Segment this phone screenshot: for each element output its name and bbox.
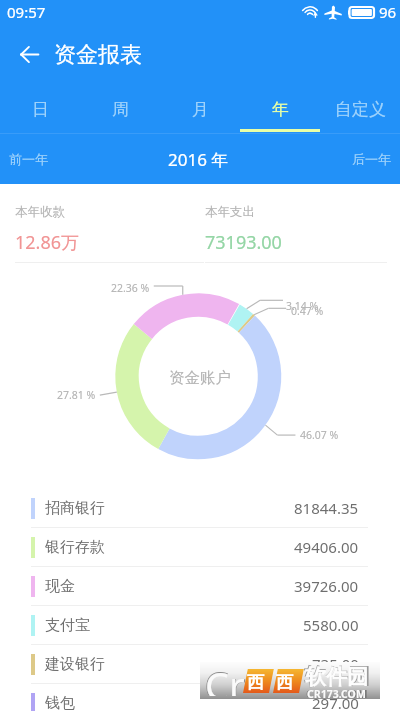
staticText: 建设银行	[45, 655, 105, 674]
staticText: 46.07 %	[300, 428, 339, 442]
staticText: 钱包	[45, 694, 75, 711]
button[interactable]: 现金	[0, 567, 400, 606]
button[interactable]: 月	[160, 85, 240, 134]
button[interactable]: 支付宝	[0, 606, 400, 645]
staticText: 0.47 %	[291, 304, 324, 318]
button[interactable]: 年	[240, 85, 320, 134]
staticText: 西	[276, 672, 293, 693]
staticText: 资金报表	[54, 41, 142, 69]
button[interactable]: 周	[80, 85, 160, 134]
staticText: 银行存款	[45, 538, 105, 557]
staticText: 297.00	[312, 693, 359, 711]
staticText: 49406.00	[294, 537, 359, 557]
button[interactable]: 前一年	[0, 134, 82, 184]
button[interactable]: 建设银行	[0, 645, 400, 684]
staticText: 支付宝	[45, 616, 90, 635]
staticText: 735.00	[312, 654, 359, 674]
staticText: 22.36 %	[111, 281, 150, 295]
staticText: 96	[379, 2, 397, 22]
staticText: Cr	[205, 659, 245, 696]
staticText: 前一年	[9, 151, 48, 167]
staticText: 招商银行	[45, 499, 105, 518]
staticText: Cr	[204, 658, 246, 695]
staticText: 资金账户	[169, 368, 231, 388]
staticText: 本年收款	[15, 204, 65, 220]
staticText: 12.86万	[15, 230, 80, 255]
staticText: CR173.COM	[306, 686, 368, 701]
staticText: 27.81 %	[57, 388, 96, 402]
staticText: 日	[32, 99, 49, 120]
staticText: 软件园	[304, 663, 370, 691]
staticText: CR173.COM	[307, 687, 366, 701]
button[interactable]: 银行存款	[0, 528, 400, 567]
button[interactable]: 招商银行	[0, 489, 400, 528]
staticText: 月	[192, 99, 209, 120]
staticText: 39726.00	[294, 576, 359, 596]
button[interactable]: 后一年	[318, 134, 400, 184]
staticText: 2016 年	[168, 148, 229, 171]
staticText: 西	[247, 672, 264, 693]
button[interactable]: 钱包	[0, 684, 400, 711]
staticText: 5580.00	[303, 615, 359, 635]
staticText: 3.14 %	[286, 299, 319, 313]
staticText: 自定义	[335, 99, 386, 120]
staticText: 09:57	[7, 2, 46, 22]
button[interactable]: 自定义	[320, 85, 400, 134]
staticText: 软件园	[305, 664, 368, 690]
staticText: 现金	[45, 577, 75, 596]
button[interactable]: Back	[6, 31, 53, 78]
staticText: 73193.00	[205, 230, 282, 255]
staticText: 年	[272, 99, 289, 120]
staticText: 周	[112, 99, 129, 120]
staticText: 后一年	[352, 151, 391, 167]
button[interactable]: 日	[0, 85, 80, 134]
staticText: 本年支出	[205, 204, 255, 220]
staticText: 81844.35	[294, 498, 359, 518]
